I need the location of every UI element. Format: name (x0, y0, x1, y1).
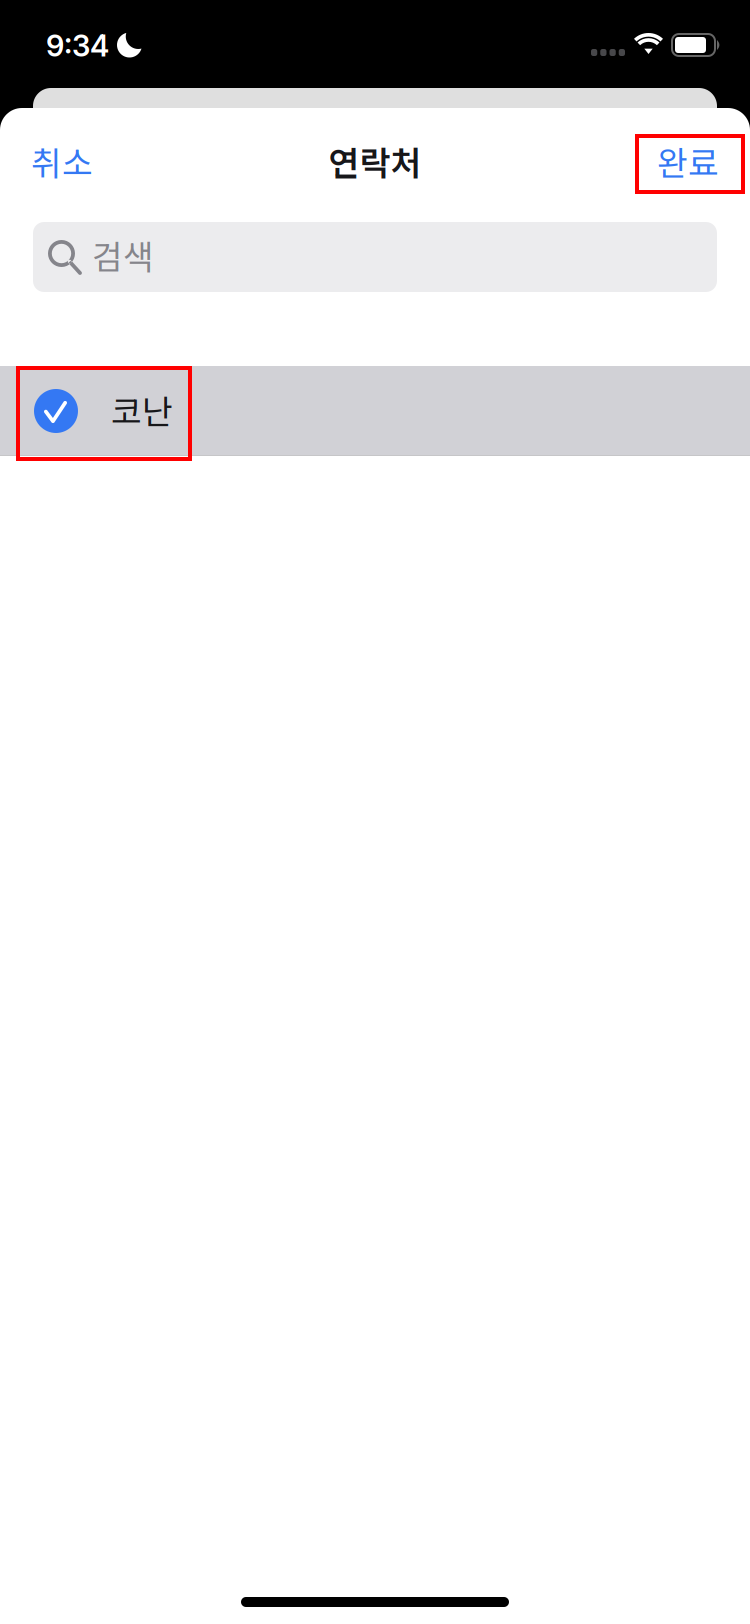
staticText: 코난 (111, 385, 173, 434)
staticText: 9:34 (46, 28, 109, 63)
button[interactable]: 취소 (31, 128, 125, 194)
staticText: 취소 (31, 137, 93, 185)
button[interactable]: 검색 (33, 222, 717, 292)
staticText: 검색 (92, 231, 154, 279)
staticText: 연락처 (328, 137, 421, 185)
staticText: 완료 (657, 137, 719, 185)
button[interactable]: 코난 (0, 366, 750, 456)
button[interactable]: 완료 (635, 134, 745, 194)
